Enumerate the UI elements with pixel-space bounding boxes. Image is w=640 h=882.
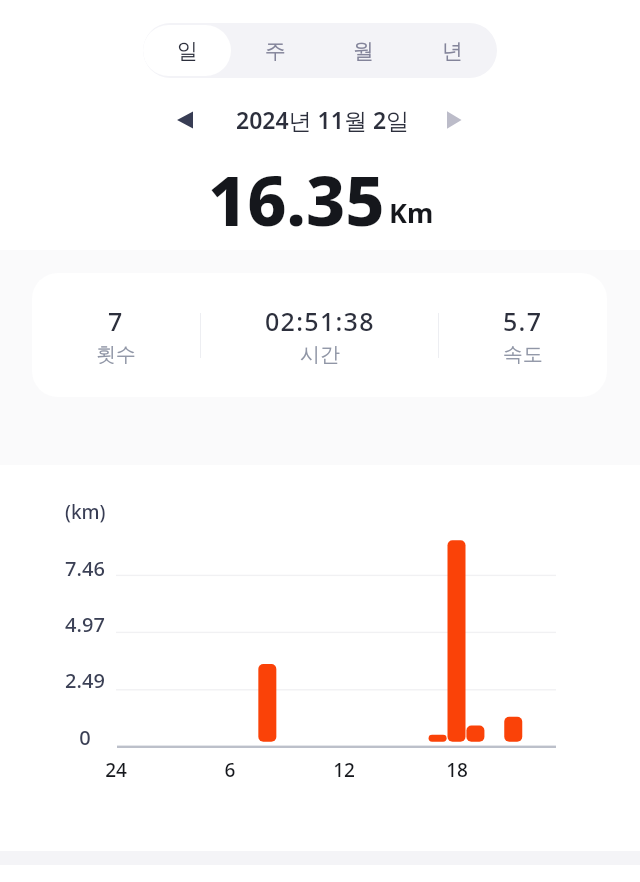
button[interactable]: 월 (319, 25, 408, 76)
staticText: 월 (353, 38, 374, 64)
staticText: 24 (76, 757, 156, 783)
staticText: 2024년 11월 2일 (236, 104, 410, 135)
staticText: 년 (442, 38, 463, 64)
staticText: 시간 (300, 342, 340, 367)
button[interactable]: 일 (143, 25, 231, 76)
staticText: 7.46 (45, 555, 125, 582)
button[interactable]: 02:51:38 (201, 273, 438, 397)
staticText: 주 (265, 38, 286, 64)
staticText: 5.7 (503, 304, 543, 338)
button[interactable]: 년 (408, 25, 497, 76)
staticText: 12 (304, 757, 384, 783)
staticText: 4.97 (45, 611, 125, 638)
button[interactable]: Next day (431, 98, 475, 142)
staticText: 0 (45, 724, 125, 751)
staticText: 6 (190, 757, 270, 783)
staticText: 2.49 (45, 667, 125, 694)
staticText: (km) (65, 499, 106, 525)
button[interactable]: 5.7 (439, 273, 607, 397)
staticText: 일 (177, 38, 198, 64)
button[interactable]: Previous day (164, 98, 208, 142)
staticText: Km (389, 194, 434, 231)
staticText: 18 (417, 757, 497, 783)
staticText: 속도 (503, 342, 543, 367)
staticText: 02:51:38 (265, 304, 375, 338)
button[interactable]: 7 (32, 273, 200, 397)
button[interactable]: 주 (231, 25, 319, 76)
staticText: 횟수 (96, 342, 136, 367)
staticText: 16.35 (208, 153, 385, 246)
staticText: 7 (108, 304, 124, 338)
